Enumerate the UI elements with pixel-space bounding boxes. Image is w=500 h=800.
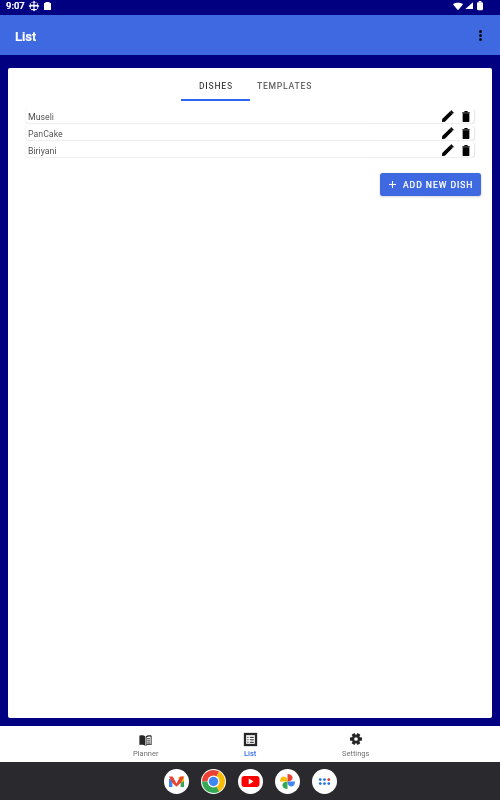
button[interactable]: DISHES (181, 73, 250, 101)
button[interactable]: App (201, 769, 226, 794)
button[interactable]: Edit (442, 110, 454, 122)
button[interactable]: Settings (303, 726, 408, 762)
button[interactable]: Delete (460, 110, 472, 122)
staticText: DISHES (199, 81, 233, 91)
button[interactable]: Delete (460, 127, 472, 139)
button[interactable]: TEMPLATES (250, 73, 319, 91)
staticText: Settings (342, 749, 370, 758)
button[interactable]: Delete (460, 144, 472, 156)
button[interactable]: Museli (26, 109, 474, 123)
staticText: List (15, 29, 37, 44)
staticText: List (244, 749, 257, 758)
button[interactable]: More options (470, 25, 490, 45)
button[interactable]: ADD NEW DISH (380, 173, 481, 196)
staticText: Biriyani (28, 146, 57, 156)
staticText: 9:07 (6, 0, 25, 11)
button[interactable]: App (238, 769, 263, 794)
staticText: Museli (28, 112, 55, 122)
button[interactable]: App (164, 769, 189, 794)
button[interactable]: PanCake (26, 126, 474, 140)
staticText: Planner (133, 749, 159, 758)
button[interactable]: App (312, 769, 337, 794)
button[interactable]: Biriyani (26, 143, 474, 157)
staticText: PanCake (28, 129, 63, 139)
button[interactable]: List (198, 726, 303, 762)
button[interactable]: App (275, 769, 300, 794)
button[interactable]: Edit (442, 144, 454, 156)
staticText: ADD NEW DISH (403, 180, 474, 190)
button[interactable]: Edit (442, 127, 454, 139)
staticText: TEMPLATES (257, 81, 313, 91)
button[interactable]: Planner (93, 726, 198, 762)
